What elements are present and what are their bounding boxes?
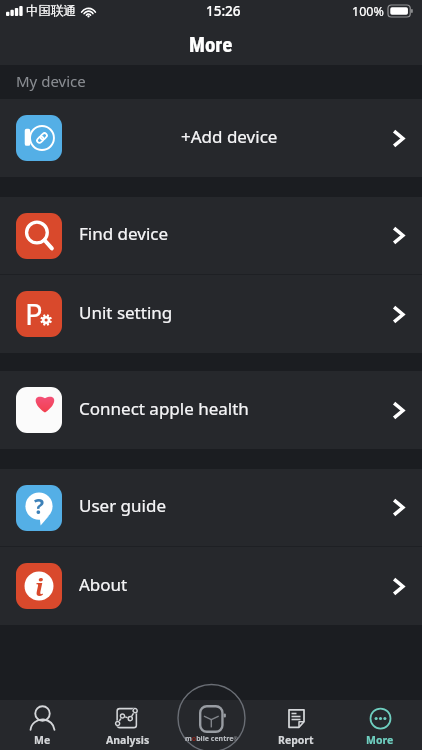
button[interactable]: Report [254, 700, 338, 750]
button[interactable]: +Add device [0, 99, 422, 177]
button[interactable]: P [0, 275, 422, 353]
staticText: P [25, 294, 43, 333]
staticText: Me [34, 733, 51, 747]
staticText: +Add device [181, 125, 278, 148]
staticText: Report [278, 733, 314, 747]
staticText: 中国联通 [26, 3, 76, 19]
staticText: 15:26 [206, 2, 241, 20]
staticText: User guide [79, 494, 392, 517]
staticText: About [79, 573, 392, 596]
button[interactable]: Analysis [85, 700, 170, 750]
staticText: ? [34, 492, 45, 521]
staticText: Unit setting [79, 301, 392, 324]
staticText: My device [16, 71, 86, 91]
staticText: mobile centre® [185, 734, 238, 744]
staticText: Connect apple health [79, 397, 392, 420]
button[interactable]: Me [0, 700, 85, 750]
button[interactable]: Connect apple health [0, 371, 422, 449]
button[interactable]: mobile centre [177, 693, 246, 743]
staticText: More [366, 733, 394, 747]
staticText: Analysis [106, 733, 150, 747]
button[interactable]: More [338, 700, 422, 750]
staticText: More [189, 33, 233, 58]
button[interactable]: i [0, 547, 422, 625]
button[interactable]: ? [0, 469, 422, 546]
staticText: i [35, 570, 44, 603]
staticText: Find device [79, 222, 392, 245]
button[interactable]: Find device [0, 197, 422, 274]
staticText: 100% [352, 3, 384, 20]
